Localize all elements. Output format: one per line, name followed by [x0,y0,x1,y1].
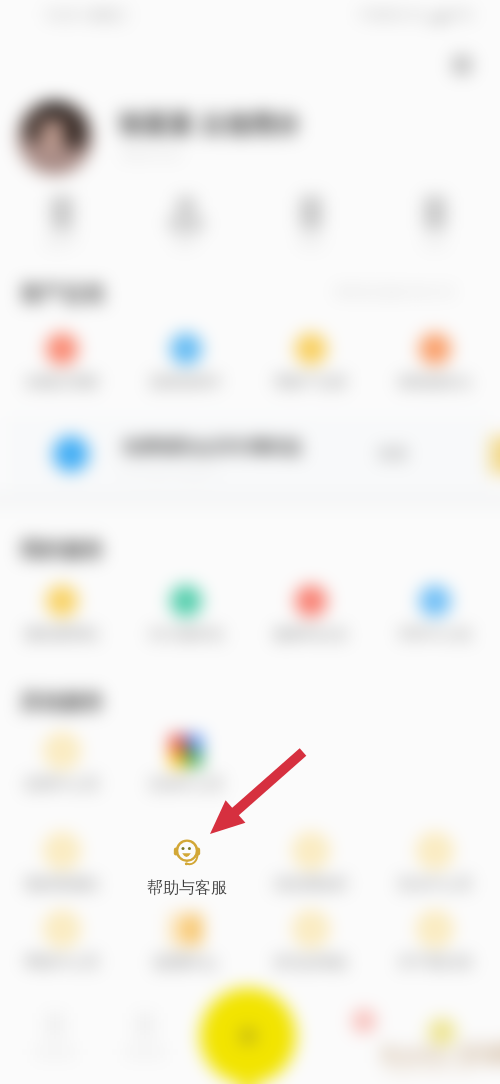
staticText: 消息通知栏 [251,875,371,894]
staticText: 钱包 [251,234,371,249]
button[interactable]: 个人主页 [8,94,328,180]
button[interactable] [12,727,112,799]
staticText: 账单 [126,234,246,249]
button[interactable] [261,188,361,252]
staticText: 缴电费用站 [2,625,122,644]
staticText: 其他服务 [20,689,104,715]
button[interactable] [385,577,485,649]
button[interactable] [261,827,361,899]
button[interactable]: 导航5 [394,1000,486,1084]
staticText: 健康码点击 [251,625,371,644]
button[interactable] [6,416,494,492]
button[interactable]: 导航4 [314,1000,406,1084]
button[interactable] [136,727,236,799]
button[interactable] [12,827,112,899]
staticText: 意见反馈处 [251,953,371,972]
button[interactable] [385,827,485,899]
button[interactable] [385,905,485,977]
button[interactable] [261,325,361,397]
staticText: 我的客服站 [2,875,122,894]
button[interactable] [12,188,112,252]
button[interactable]: 设置 [444,46,484,86]
button[interactable] [12,905,112,977]
button[interactable] [136,577,236,649]
button[interactable] [385,325,485,397]
staticText: Baidu 经验 [380,1036,500,1070]
staticText: 查看 [378,445,408,464]
button[interactable] [136,325,236,397]
other: 帮助与客服 [172,837,202,867]
button[interactable] [385,188,485,252]
staticText: 理财产品库 [251,373,371,392]
staticText: 免费领取会员专属权益 [122,436,302,459]
button[interactable]: 导航3 [199,1000,291,1084]
staticText: 我的服务 [20,537,104,563]
staticText: 关于我们的 [375,953,495,972]
staticText: 保险服务台 [375,373,495,392]
button[interactable] [12,577,112,649]
staticText: 花呗借呗中 [126,373,246,392]
button[interactable] [12,325,112,397]
staticText: 资产总览 [20,281,104,307]
staticText: jingyan.baidu.com [386,1062,473,1076]
button[interactable] [261,577,361,649]
staticText: 设置中心页 [2,775,122,794]
staticText: 会员 [375,234,495,249]
button[interactable] [261,905,361,977]
button[interactable] [261,727,361,799]
staticText: 应用中心 [126,953,246,973]
staticText: 安全中心页 [375,875,495,894]
staticText: 张某某 云信用分 [118,106,300,140]
button[interactable]: 帮助与客服 [137,837,237,898]
staticText: 余额宝理财 [2,373,122,392]
button[interactable] [136,188,236,252]
staticText: 帮助中心页 [2,953,122,972]
button[interactable] [136,905,236,977]
staticText: 市民中心站 [375,625,495,644]
staticText: 出行服务包 [126,625,246,644]
staticText: 总资产 [2,234,122,249]
staticText: 活动中心页 [126,775,246,794]
staticText: 帮助与客服 [137,878,237,898]
